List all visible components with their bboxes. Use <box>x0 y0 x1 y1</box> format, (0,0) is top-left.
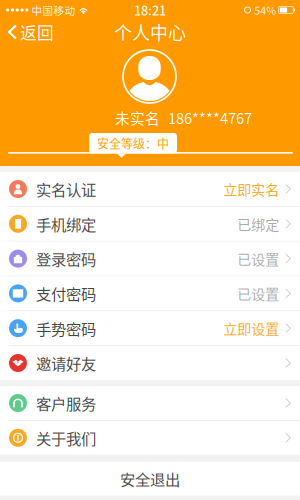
button[interactable]: 登录密码 <box>0 242 300 276</box>
staticText: 个人中心 <box>114 19 186 45</box>
staticText: 已设置 <box>237 283 279 304</box>
staticText: 关于我们 <box>36 427 96 449</box>
staticText: 54% <box>254 2 276 18</box>
staticText: 已设置 <box>237 248 279 269</box>
staticText: 安全等级：中 <box>97 134 169 152</box>
staticText: 立即设置 <box>223 318 279 338</box>
button[interactable]: 手势密码 <box>0 311 300 345</box>
button[interactable]: 客户服务 <box>0 386 300 420</box>
button[interactable]: 返回 <box>0 20 63 44</box>
button[interactable]: 安全退出 <box>0 462 300 496</box>
staticText: 未实名 <box>115 107 160 128</box>
staticText: 登录密码 <box>36 247 96 270</box>
button[interactable]: 手机绑定 <box>0 207 300 241</box>
staticText: 186****4767 <box>168 107 252 128</box>
staticText: 安全退出 <box>120 468 180 490</box>
staticText: 实名认证 <box>36 178 96 200</box>
staticText: 中国移动 <box>31 2 75 18</box>
staticText: 返回 <box>20 20 54 44</box>
staticText: 已绑定 <box>237 214 279 234</box>
staticText: 手势密码 <box>36 317 96 339</box>
button[interactable]: 支付密码 <box>0 276 300 310</box>
button[interactable]: 实名认证 <box>0 172 300 206</box>
staticText: 邀请好友 <box>36 352 96 374</box>
staticText: 18:21 <box>134 1 166 19</box>
button[interactable]: 邀请好友 <box>0 346 300 380</box>
staticText: 立即实名 <box>223 179 279 199</box>
button[interactable]: 关于我们 <box>0 421 300 455</box>
staticText: 手机绑定 <box>36 213 96 235</box>
staticText: 客户服务 <box>36 392 96 414</box>
staticText: 支付密码 <box>36 282 96 304</box>
